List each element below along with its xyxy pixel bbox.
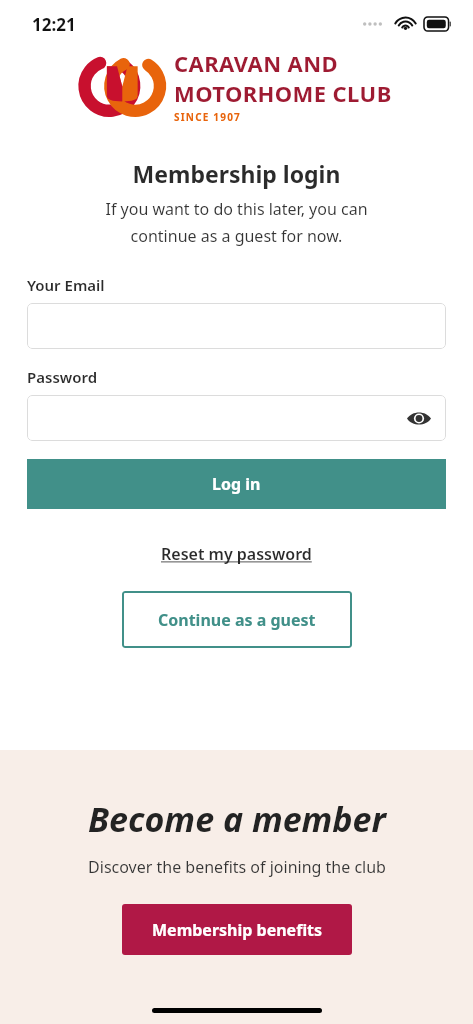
button[interactable]: Show password bbox=[404, 403, 434, 433]
staticText: Membership benefits bbox=[152, 919, 323, 941]
button[interactable]: Membership benefits bbox=[122, 904, 352, 955]
staticText: Continue as a guest bbox=[158, 609, 316, 631]
staticText: MOTORHOME CLUB bbox=[174, 78, 392, 108]
staticText: Become a member bbox=[88, 796, 386, 842]
staticText: Discover the benefits of joining the clu… bbox=[88, 856, 386, 878]
button[interactable]: Show password bbox=[27, 395, 446, 441]
staticText: Log in bbox=[212, 473, 261, 495]
staticText: Your Email bbox=[27, 275, 105, 295]
staticText: Reset my password bbox=[161, 543, 312, 565]
button[interactable]: Continue as a guest bbox=[122, 591, 352, 648]
staticText: SINCE 1907 bbox=[174, 110, 242, 124]
staticText: CARAVAN AND bbox=[174, 48, 338, 78]
staticText: Password bbox=[27, 367, 98, 387]
staticText: Membership login bbox=[0, 158, 473, 189]
button[interactable]: Log in bbox=[27, 459, 446, 509]
staticText: 12:21 bbox=[32, 13, 76, 36]
button[interactable]: Reset my password bbox=[155, 539, 318, 569]
button[interactable] bbox=[27, 303, 446, 349]
staticText: If you want to do this later, you can co… bbox=[24, 198, 449, 247]
